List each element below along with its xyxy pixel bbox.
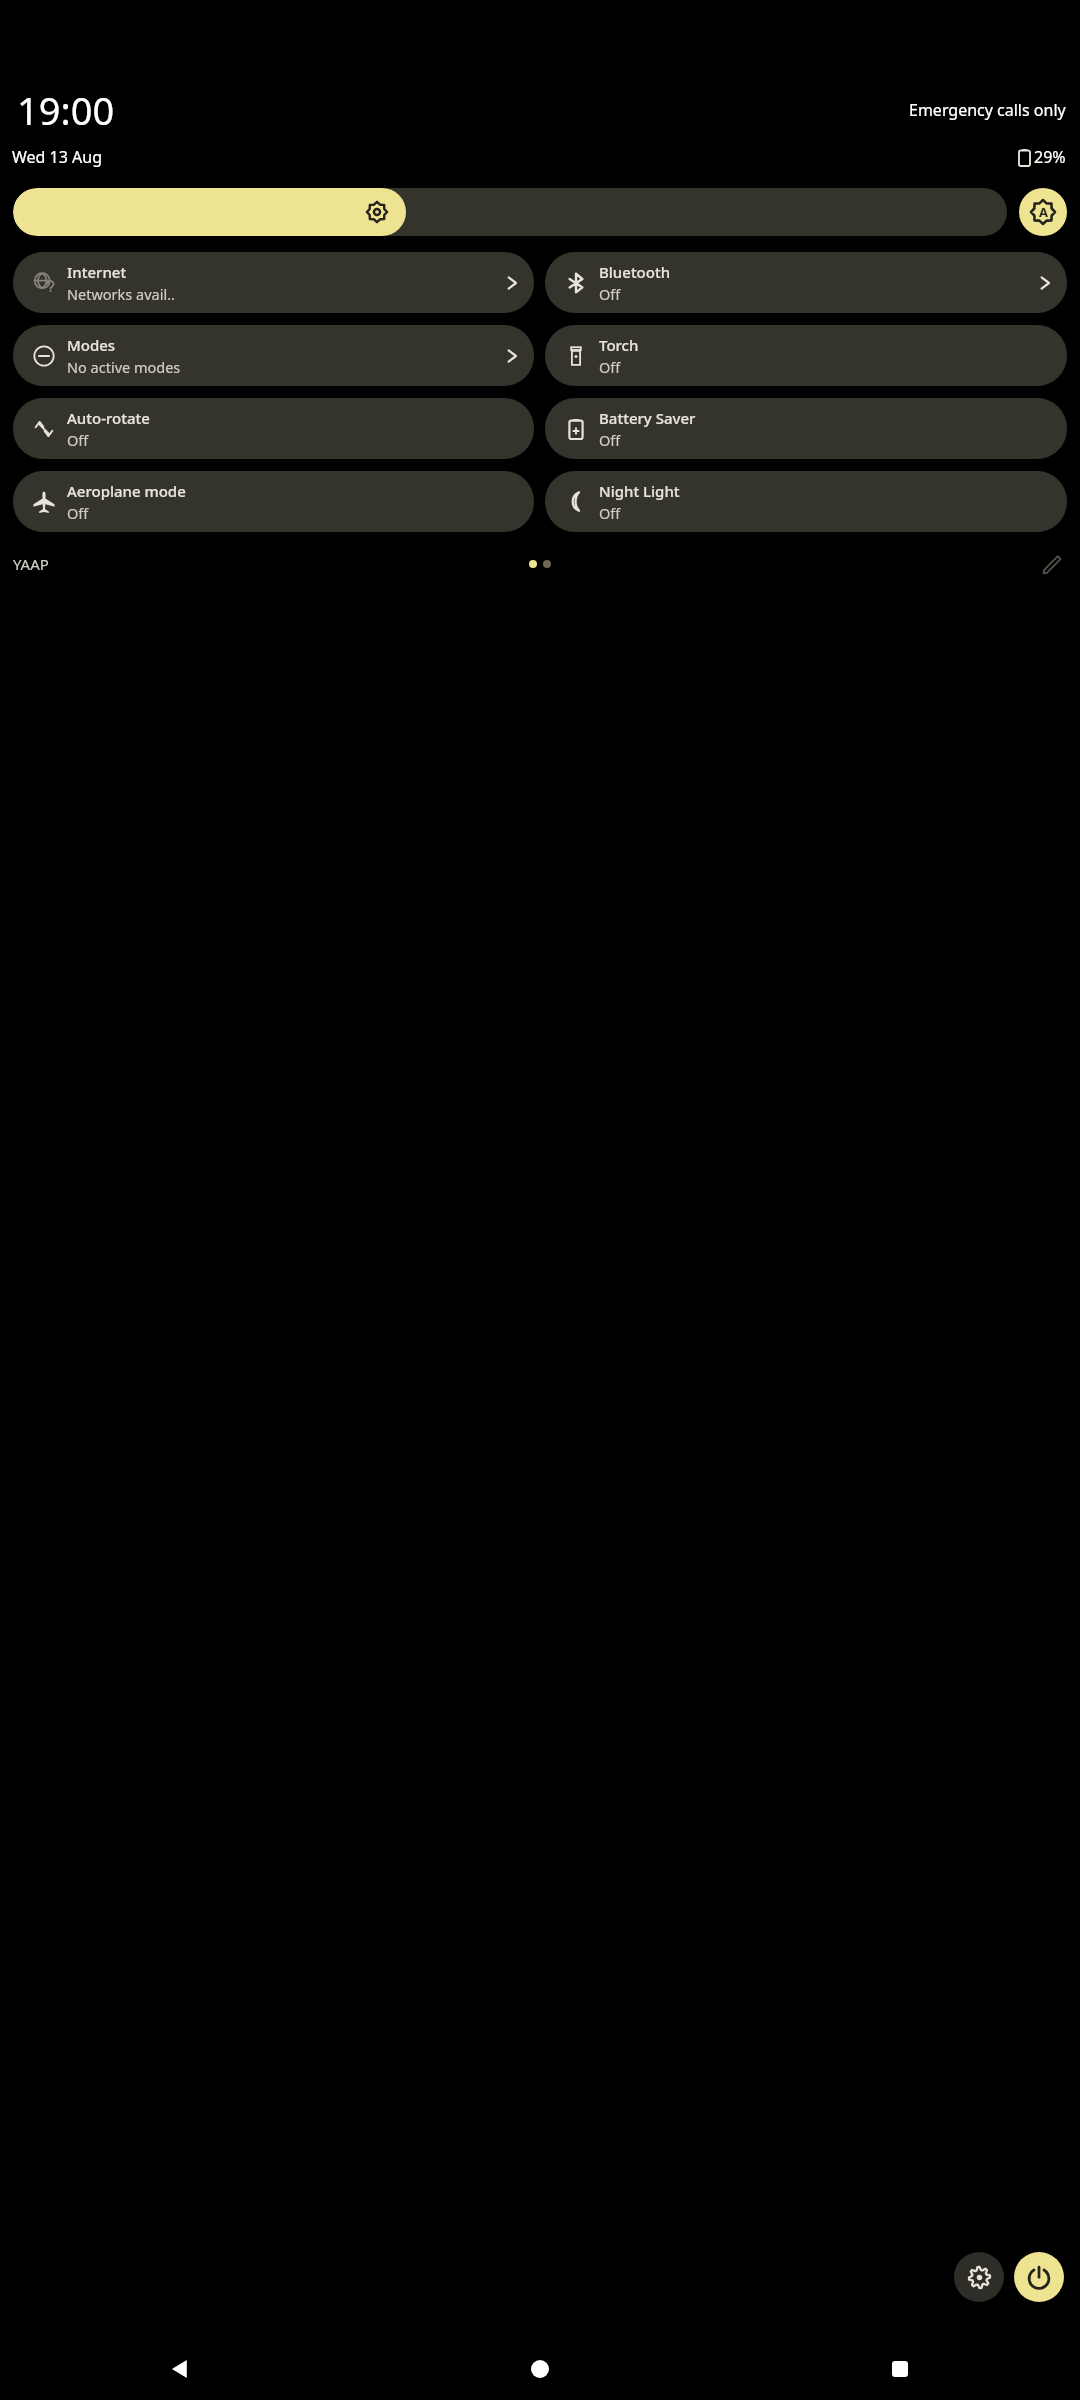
staticText: Night Light	[599, 481, 680, 501]
staticText: Emergency calls only	[909, 99, 1066, 121]
button[interactable]: Power	[1014, 2252, 1064, 2302]
staticText: Off	[67, 430, 89, 450]
staticText: Off	[599, 430, 621, 450]
button[interactable]: Auto brightness	[1019, 188, 1067, 236]
button[interactable]: Auto-rotate	[13, 398, 534, 459]
staticText: Aeroplane mode	[67, 481, 186, 501]
staticText: Modes	[67, 335, 116, 355]
staticText: Off	[67, 503, 89, 523]
button[interactable]: Torch	[545, 325, 1067, 386]
button[interactable]: Battery Saver	[545, 398, 1067, 459]
staticText: Off	[599, 284, 621, 304]
button[interactable]: Modes	[13, 325, 534, 386]
staticText: No active modes	[67, 357, 181, 377]
button[interactable]: Internet	[13, 252, 534, 313]
button[interactable]: Edit tiles	[1034, 547, 1068, 581]
staticText: Auto-rotate	[67, 408, 150, 428]
staticText: Internet	[67, 262, 127, 282]
staticText: 19:00	[17, 84, 115, 136]
button[interactable]: Recents	[720, 2338, 1080, 2400]
button[interactable]: Brightness	[13, 188, 1007, 236]
button[interactable]: Settings	[954, 2252, 1004, 2302]
staticText: Battery Saver	[599, 408, 696, 428]
staticText: Networks avail..	[67, 284, 175, 304]
staticText: Off	[599, 503, 621, 523]
staticText: 29%	[1034, 146, 1066, 168]
staticText: Bluetooth	[599, 262, 671, 282]
staticText: Wed 13 Aug	[12, 146, 103, 168]
staticText: A	[1039, 203, 1048, 221]
button[interactable]: Home	[360, 2338, 720, 2400]
button[interactable]: Bluetooth	[545, 252, 1067, 313]
button[interactable]: Night Light	[545, 471, 1067, 532]
button[interactable]: Aeroplane mode	[13, 471, 534, 532]
staticText: Off	[599, 357, 621, 377]
staticText: Torch	[599, 335, 639, 355]
staticText: YAAP	[13, 554, 49, 574]
button[interactable]: Back	[0, 2338, 360, 2400]
